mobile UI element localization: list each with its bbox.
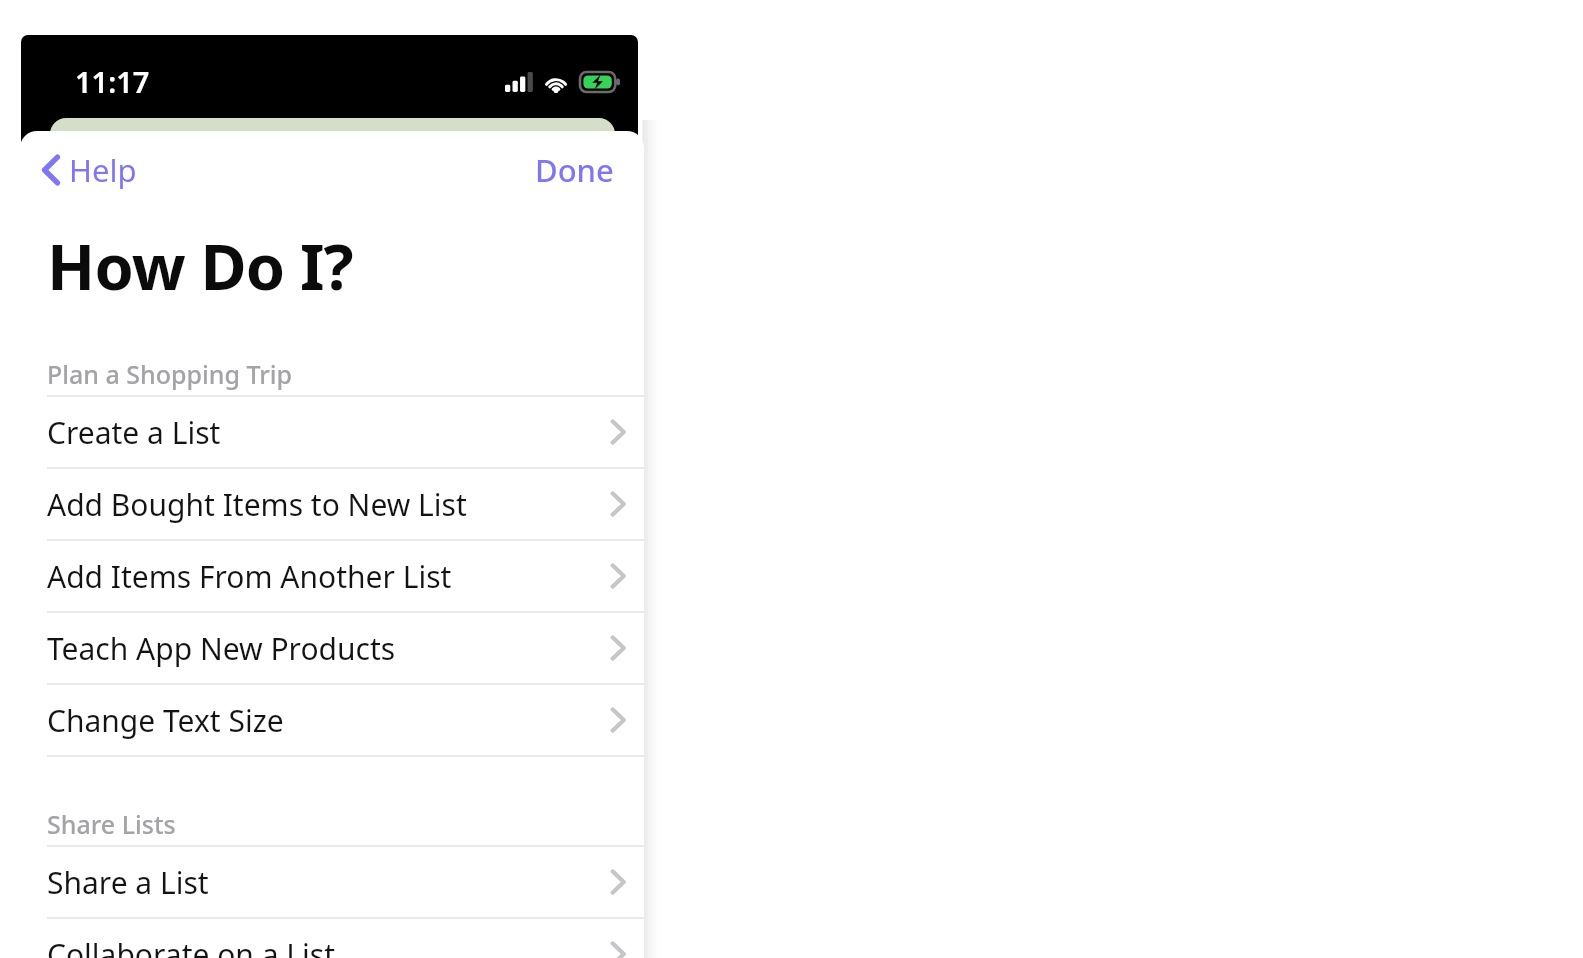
staticText: Share Lists bbox=[47, 807, 176, 841]
staticText: Add Bought Items to New List bbox=[47, 484, 610, 525]
button[interactable]: Share a List bbox=[20, 847, 644, 917]
staticText: Done bbox=[535, 149, 614, 191]
button[interactable]: Change Text Size bbox=[20, 685, 644, 755]
button[interactable]: Add Bought Items to New List bbox=[20, 469, 644, 539]
button[interactable]: Collaborate on a List bbox=[20, 919, 644, 958]
staticText: 11:17 bbox=[75, 62, 150, 101]
staticText: Plan a Shopping Trip bbox=[47, 357, 293, 391]
staticText: Teach App New Products bbox=[47, 628, 610, 669]
staticText: How Do I? bbox=[47, 223, 353, 309]
staticText: Add Items From Another List bbox=[47, 556, 610, 597]
staticText: Collaborate on a List bbox=[47, 934, 610, 958]
button[interactable]: Create a List bbox=[20, 397, 644, 467]
staticText: Help bbox=[69, 149, 137, 191]
button[interactable]: Help bbox=[34, 143, 145, 197]
button[interactable]: Done bbox=[527, 143, 622, 197]
staticText: Share a List bbox=[47, 862, 610, 903]
button[interactable]: Teach App New Products bbox=[20, 613, 644, 683]
staticText: Create a List bbox=[47, 412, 610, 453]
button[interactable]: Add Items From Another List bbox=[20, 541, 644, 611]
staticText: Change Text Size bbox=[47, 700, 610, 741]
